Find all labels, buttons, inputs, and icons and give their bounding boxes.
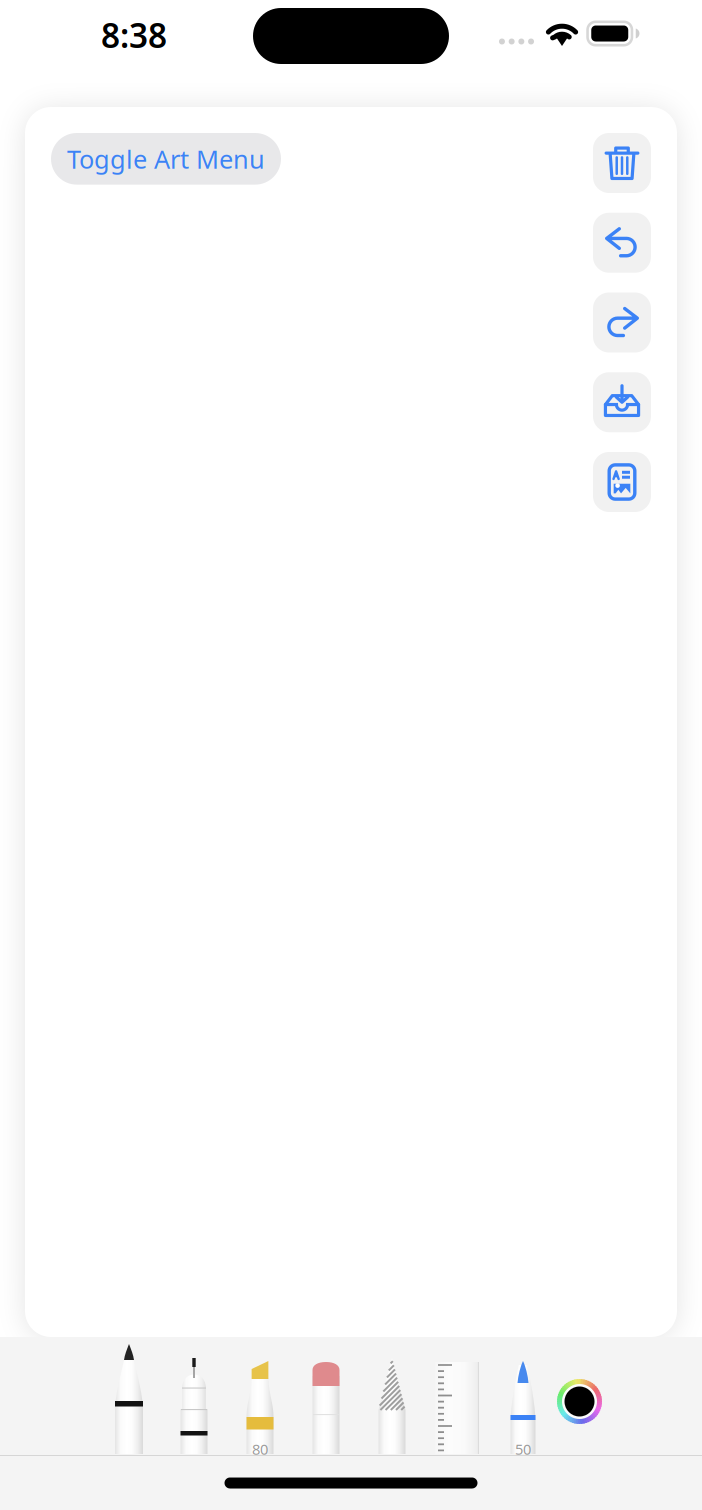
button[interactable]: Pencil [115, 1344, 143, 1454]
button[interactable]: Highlighter [246, 1361, 273, 1454]
button[interactable]: Redo [593, 292, 651, 352]
staticText: 50 [515, 1439, 531, 1459]
button[interactable]: Ruler [435, 1362, 479, 1454]
staticText: Toggle Art Menu [67, 142, 265, 176]
button[interactable]: Marker [510, 1361, 535, 1454]
button[interactable]: Crayon [378, 1358, 405, 1454]
staticText: 80 [252, 1439, 268, 1459]
button[interactable]: Eraser [312, 1362, 339, 1454]
button[interactable]: Undo [593, 213, 651, 273]
button[interactable]: Document [593, 452, 651, 512]
button[interactable]: Import [593, 372, 651, 432]
button[interactable]: Color [556, 1378, 602, 1424]
button[interactable]: Delete [593, 133, 651, 193]
button[interactable]: Pen [180, 1358, 207, 1454]
staticText: 8:38 [101, 13, 167, 57]
button[interactable]: Toggle Art Menu [51, 133, 281, 185]
